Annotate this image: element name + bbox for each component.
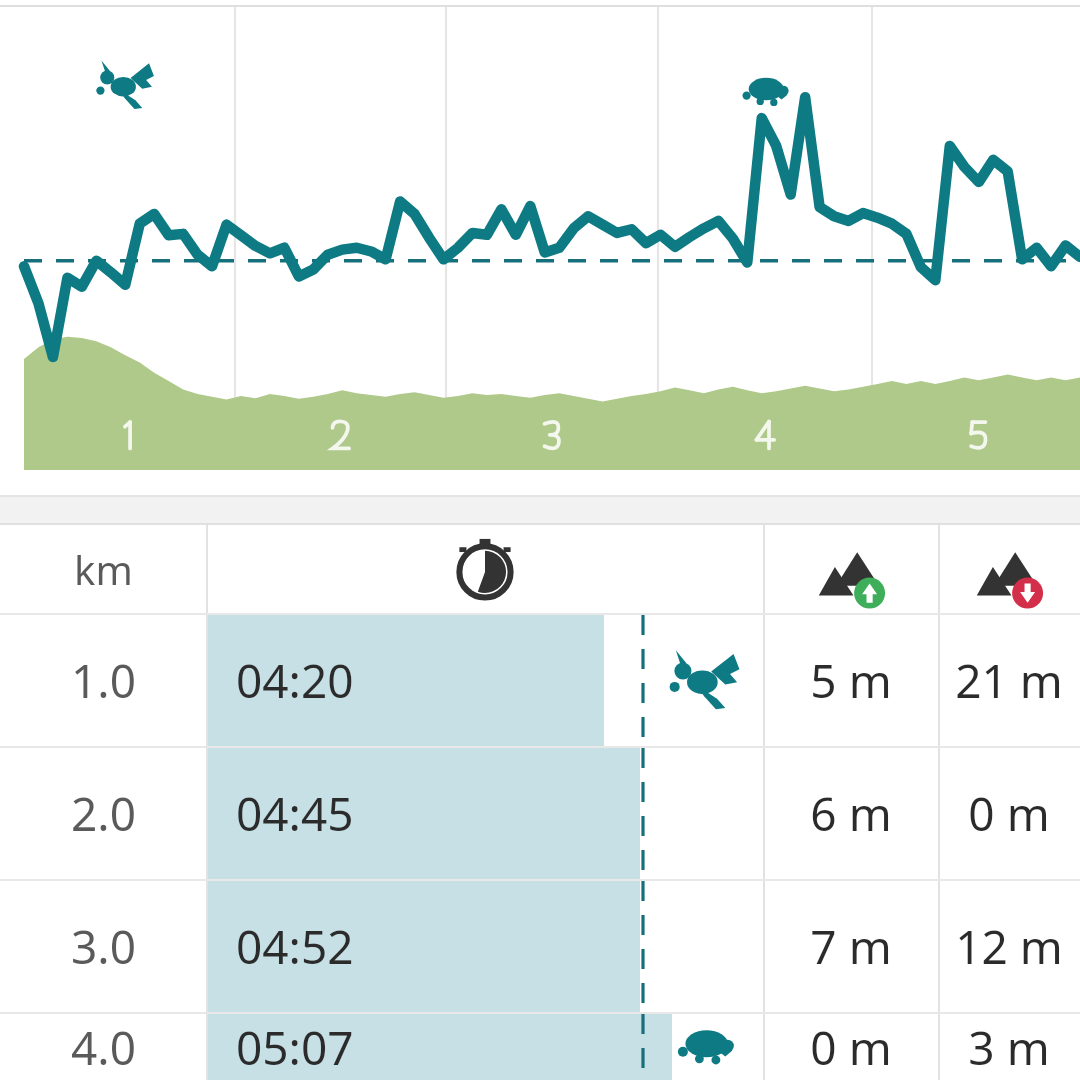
button[interactable]: 2.0 [0,748,1080,879]
button[interactable]: 3.0 [0,881,1080,1012]
staticText: 4.0 [71,1016,136,1079]
staticText: 2.0 [71,782,136,845]
staticText: 5 m [810,649,892,712]
staticText: 12 m [955,915,1063,978]
staticText: 6 m [810,782,892,845]
staticText: 0 m [968,782,1050,845]
staticText: km [74,542,133,596]
staticText: 21 m [955,649,1063,712]
staticText: 1.0 [71,649,136,712]
staticText: 3 m [968,1016,1050,1079]
button[interactable]: Elevation loss [938,525,1080,613]
button[interactable]: Lap time [206,525,763,613]
button[interactable]: 1.0 [0,615,1080,746]
staticText: 04:20 [236,649,354,712]
button[interactable]: 4.0 [0,1014,1080,1080]
staticText: 7 m [810,915,892,978]
staticText: 3.0 [71,915,136,978]
staticText: 04:52 [236,915,354,978]
staticText: 0 m [810,1016,892,1079]
staticText: 05:07 [236,1016,354,1079]
button[interactable]: Elevation gain [763,525,938,613]
staticText: 04:45 [236,782,354,845]
